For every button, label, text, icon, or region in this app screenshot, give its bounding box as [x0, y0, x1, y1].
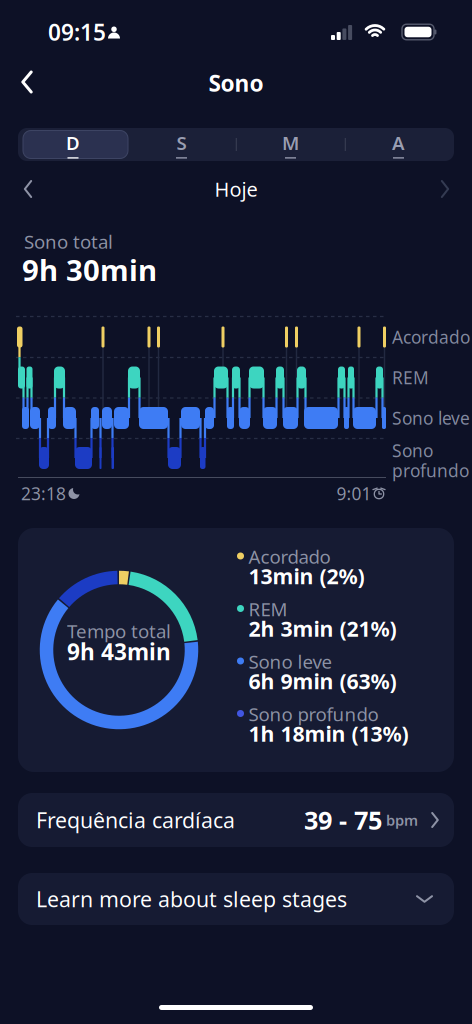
button[interactable]: Learn more about sleep stages: [18, 873, 454, 925]
staticText: Hoje: [214, 176, 257, 202]
staticText: Sono leve: [248, 649, 332, 674]
staticText: Acordado: [392, 325, 470, 348]
staticText: 9:01: [336, 482, 371, 505]
staticText: Acordado: [248, 544, 330, 569]
staticText: 1h 18min (13%): [248, 719, 408, 748]
button[interactable]: [11, 62, 43, 102]
staticText: bpm: [382, 810, 418, 830]
staticText: Sono total: [24, 229, 113, 254]
button[interactable]: Frequência cardíaca: [18, 793, 454, 847]
staticText: Sono profundo: [248, 702, 378, 726]
staticText: Frequência cardíaca: [36, 806, 235, 834]
button[interactable]: A: [345, 128, 451, 161]
staticText: profundo: [392, 459, 469, 482]
button[interactable]: D: [20, 128, 126, 161]
staticText: 2h 3min (21%): [248, 614, 396, 643]
staticText: REM: [392, 366, 429, 389]
staticText: D: [66, 130, 80, 155]
button[interactable]: [432, 173, 457, 205]
button[interactable]: M: [237, 128, 343, 161]
staticText: Sono: [392, 439, 433, 462]
staticText: Learn more about sleep stages: [36, 885, 347, 913]
staticText: 6h 9min (63%): [248, 667, 396, 695]
staticText: A: [392, 130, 405, 155]
staticText: Tempo total: [67, 619, 171, 643]
button[interactable]: S: [128, 128, 234, 161]
staticText: 09:15: [48, 17, 106, 47]
staticText: M: [282, 130, 299, 155]
staticText: REM: [248, 597, 287, 621]
staticText: 9h 43min: [67, 636, 171, 666]
staticText: 9h 30min: [22, 250, 157, 289]
staticText: Sono leve: [392, 406, 470, 429]
staticText: Sono: [208, 68, 263, 98]
staticText: 23:18: [21, 482, 66, 505]
staticText: S: [176, 130, 186, 155]
staticText: 13min (2%): [248, 562, 364, 590]
button[interactable]: [15, 173, 40, 205]
staticText: 39 - 75: [304, 803, 382, 837]
